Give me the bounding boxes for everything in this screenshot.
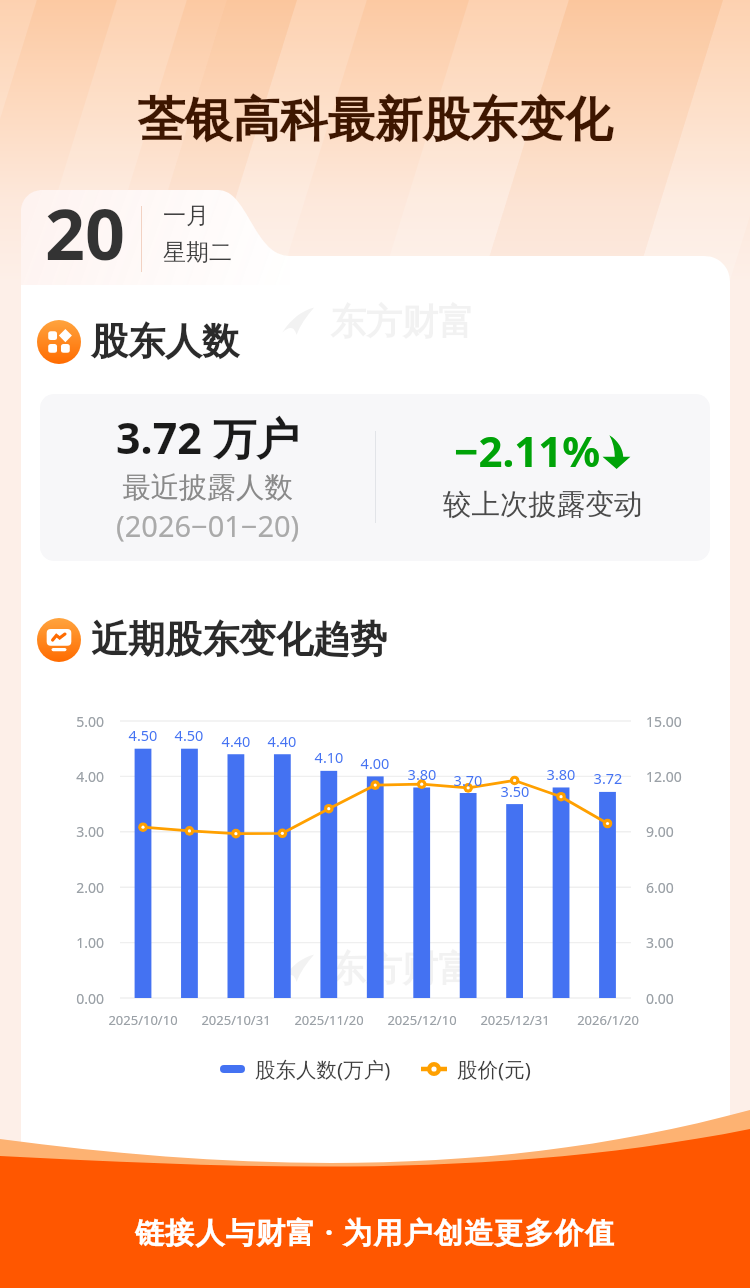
staticText: 一月 — [163, 201, 209, 230]
staticText: 2025/10/31 — [171, 1011, 301, 1029]
button[interactable]: 股价(元) — [421, 1055, 531, 1083]
staticText: 东方财富 — [330, 299, 474, 344]
staticText: 3.00 — [646, 933, 716, 952]
staticText: 1.00 — [44, 933, 104, 952]
staticText: 4.50 — [159, 725, 219, 745]
staticText: 3.72 — [578, 768, 638, 788]
staticText: 星期二 — [163, 238, 232, 267]
staticText: 2025/12/10 — [357, 1011, 487, 1029]
staticText: 5.00 — [44, 712, 104, 731]
button[interactable]: 日期 20 一月 星期二 — [21, 190, 255, 256]
staticText: 股东人数 — [91, 318, 239, 365]
staticText: 4.40 — [252, 731, 312, 751]
staticText: 2025/12/31 — [450, 1011, 580, 1029]
staticText: 12.00 — [646, 767, 716, 786]
staticText: 4.00 — [44, 767, 104, 786]
staticText: 4.00 — [345, 753, 405, 773]
staticText: 4.10 — [299, 747, 359, 767]
staticText: 2025/10/10 — [78, 1011, 208, 1029]
staticText: 股价(元) — [457, 1055, 531, 1083]
staticText: 15.00 — [646, 712, 716, 731]
staticText: 2.00 — [44, 878, 104, 897]
staticText: 较上次披露变动 — [443, 487, 643, 523]
button[interactable]: 股东人数 — [31, 312, 245, 371]
staticText: 2025/11/20 — [264, 1011, 394, 1029]
staticText: 荃银高科最新股东变化 — [0, 90, 750, 150]
staticText: 近期股东变化趋势 — [91, 616, 387, 663]
staticText: 9.00 — [646, 822, 716, 841]
staticText: 0.00 — [44, 989, 104, 1008]
staticText: 3.80 — [392, 764, 452, 784]
staticText: 6.00 — [646, 878, 716, 897]
staticText: 股东人数(万户) — [255, 1055, 391, 1083]
staticText: 4.50 — [113, 725, 173, 745]
staticText: 3.00 — [44, 822, 104, 841]
staticText: 东方财富 — [330, 946, 474, 991]
staticText: 最近披露人数 — [122, 470, 293, 506]
staticText: 4.40 — [206, 731, 266, 751]
staticText: 2026/1/20 — [543, 1011, 673, 1029]
staticText: −2.11% — [454, 422, 601, 479]
button[interactable]: 3.72 万户 — [40, 394, 710, 561]
staticText: (2026−01−20) — [116, 506, 300, 545]
staticText: 20 — [45, 185, 126, 280]
staticText: 3.50 — [485, 781, 545, 801]
staticText: 链接人与财富 · 为用户创造更多价值 — [0, 1212, 750, 1252]
button[interactable]: 近期股东变化趋势 — [31, 610, 393, 669]
staticText: 0.00 — [646, 989, 716, 1008]
button[interactable]: 股东人数(万户) — [220, 1055, 391, 1083]
staticText: 3.72 万户 — [116, 408, 300, 467]
staticText: 3.70 — [438, 770, 498, 790]
staticText: 3.80 — [531, 764, 591, 784]
